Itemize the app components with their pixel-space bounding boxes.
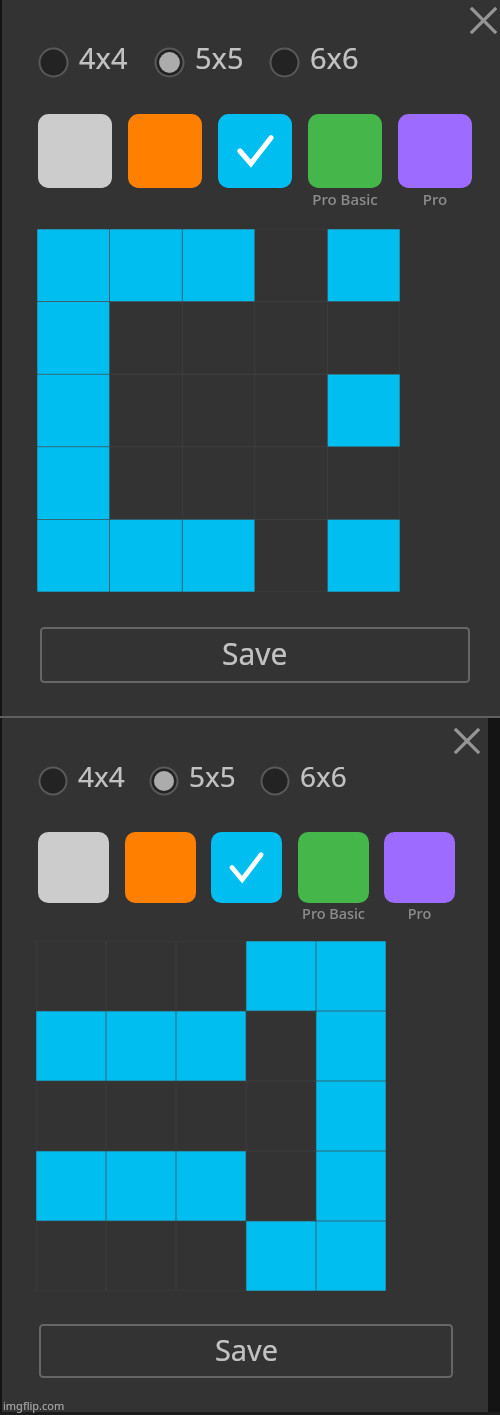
button[interactable]: 5x5 [149, 762, 236, 800]
button[interactable]: 4x4 [38, 762, 125, 800]
button[interactable]: Cell [182, 519, 255, 592]
button[interactable]: Colour [38, 832, 109, 903]
button[interactable]: Cell [110, 447, 183, 520]
staticText: imgflip.com [3, 1398, 65, 1413]
button[interactable]: Cell [110, 519, 183, 592]
button[interactable]: Cell [36, 1151, 106, 1221]
button[interactable]: 6x6 [260, 762, 347, 800]
button[interactable]: Cell [37, 302, 110, 375]
button[interactable]: Cell [316, 1011, 386, 1081]
staticText: Pro [384, 904, 455, 924]
button[interactable]: Colour [298, 832, 369, 903]
staticText: 4x4 [78, 757, 125, 795]
button[interactable]: Colour [125, 832, 196, 903]
button[interactable]: Cell [246, 941, 316, 1011]
button[interactable]: Cell [37, 374, 110, 447]
staticText: Pro Basic [308, 189, 382, 209]
button[interactable]: Save [40, 627, 470, 683]
button[interactable]: Cell [316, 941, 386, 1011]
button[interactable]: Cell [327, 374, 400, 447]
button[interactable]: Cell [176, 1151, 246, 1221]
staticText: Pro Basic [298, 904, 369, 924]
button[interactable]: Cell [327, 519, 400, 592]
staticText: Save [215, 1330, 278, 1369]
button[interactable]: Close [466, 3, 500, 38]
button[interactable]: Colour [128, 114, 202, 188]
button[interactable]: Cell [327, 302, 400, 375]
button[interactable]: Colour [308, 114, 382, 188]
button[interactable]: Cell [36, 1011, 106, 1081]
button[interactable]: Colour [38, 114, 112, 188]
button[interactable]: Cell [327, 447, 400, 520]
button[interactable]: Cell [255, 229, 328, 302]
staticText: 6x6 [300, 757, 347, 795]
button[interactable]: Save [39, 1324, 453, 1378]
button[interactable]: Cell [316, 1151, 386, 1221]
button[interactable]: Close [450, 724, 484, 758]
button[interactable]: Cell [255, 374, 328, 447]
button[interactable]: Cell [316, 1081, 386, 1151]
button[interactable]: Cell [106, 1011, 176, 1081]
button[interactable]: Cell [37, 519, 110, 592]
staticText: 5x5 [195, 38, 244, 77]
button[interactable]: Cell [327, 229, 400, 302]
button[interactable]: 5x5 [154, 43, 244, 82]
button[interactable]: 6x6 [269, 43, 359, 82]
button[interactable]: Cell [37, 229, 110, 302]
button[interactable]: Colour [218, 114, 292, 188]
staticText: Save [222, 633, 288, 674]
staticText: 5x5 [189, 757, 236, 795]
button[interactable]: Colour [384, 832, 455, 903]
button[interactable]: Cell [182, 229, 255, 302]
staticText: 6x6 [310, 38, 359, 77]
button[interactable]: Cell [316, 1221, 386, 1291]
button[interactable]: Cell [110, 229, 183, 302]
button[interactable]: Cell [246, 1221, 316, 1291]
button[interactable]: Cell [106, 1151, 176, 1221]
button[interactable]: Cell [182, 447, 255, 520]
button[interactable]: Colour [398, 114, 472, 188]
staticText: 4x4 [79, 38, 128, 77]
button[interactable]: Cell [37, 447, 110, 520]
button[interactable]: 4x4 [38, 43, 128, 82]
button[interactable]: Colour [211, 832, 282, 903]
button[interactable]: Cell [255, 519, 328, 592]
button[interactable]: Cell [176, 1011, 246, 1081]
staticText: Pro [398, 189, 472, 209]
